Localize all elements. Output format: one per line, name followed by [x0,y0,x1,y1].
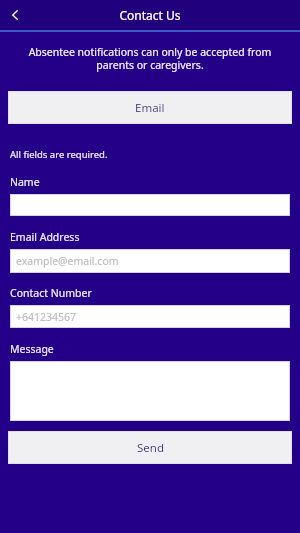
staticText: Contact Number [10,286,92,300]
button[interactable]: example@email.com [10,249,290,273]
staticText: Contact Us [119,7,181,23]
button[interactable]: +641234567 [10,305,290,328]
staticText: All fields are required. [10,148,108,161]
staticText: +641234567 [16,310,77,324]
staticText: Message [10,342,54,356]
staticText: Email Address [10,230,80,244]
button[interactable] [10,361,290,421]
staticText: Send [137,440,164,456]
button[interactable]: Back [0,0,30,30]
button[interactable]: Send [8,431,292,464]
staticText: example@email.com [16,254,119,268]
button[interactable] [10,194,290,216]
staticText: Email [135,100,165,116]
staticText: Absentee notifications can only be accep… [22,45,278,72]
button[interactable]: Email [8,91,292,124]
staticText: Name [10,175,40,189]
